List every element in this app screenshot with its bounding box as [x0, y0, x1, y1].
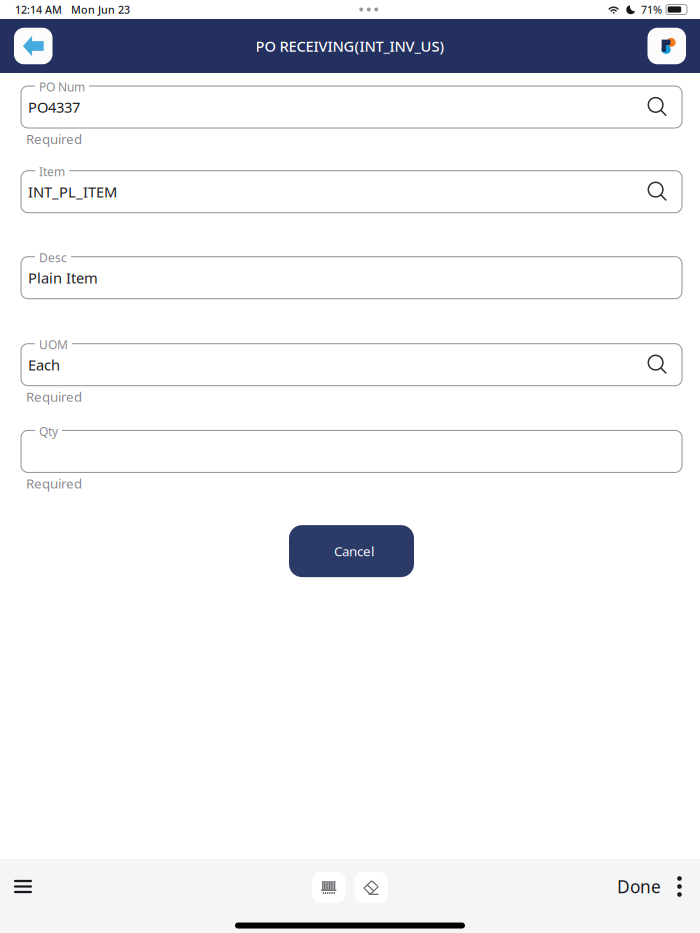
- staticText: Item: [39, 164, 65, 180]
- button[interactable]: Back: [14, 28, 52, 64]
- button[interactable]: Menu: [0, 870, 46, 902]
- staticText: Qty: [39, 423, 58, 439]
- staticText: 71%: [641, 2, 662, 17]
- staticText: UOM: [39, 337, 68, 353]
- staticText: PO Num: [39, 79, 85, 95]
- staticText: Desc: [39, 250, 67, 266]
- staticText: PO4337: [28, 97, 80, 117]
- staticText: INT_PL_ITEM: [28, 182, 117, 201]
- staticText: Done: [617, 875, 661, 898]
- button[interactable]: Clear: [354, 872, 388, 903]
- staticText: PO RECEIVING(INT_INV_US): [255, 36, 444, 56]
- staticText: Mon Jun 23: [62, 2, 130, 17]
- staticText: Cancel: [334, 542, 374, 560]
- button[interactable]: Cancel: [289, 525, 414, 577]
- staticText: Plain Item: [28, 268, 98, 287]
- staticText: Required: [26, 388, 82, 405]
- staticText: Required: [26, 130, 82, 148]
- button[interactable]: Done: [617, 870, 661, 902]
- staticText: 12:14 AM: [15, 2, 62, 17]
- button[interactable]: More options: [661, 870, 698, 902]
- staticText: Required: [26, 474, 82, 492]
- staticText: Each: [28, 355, 60, 374]
- button[interactable]: App menu: [647, 28, 686, 64]
- button[interactable]: Scan barcode: [312, 872, 345, 903]
